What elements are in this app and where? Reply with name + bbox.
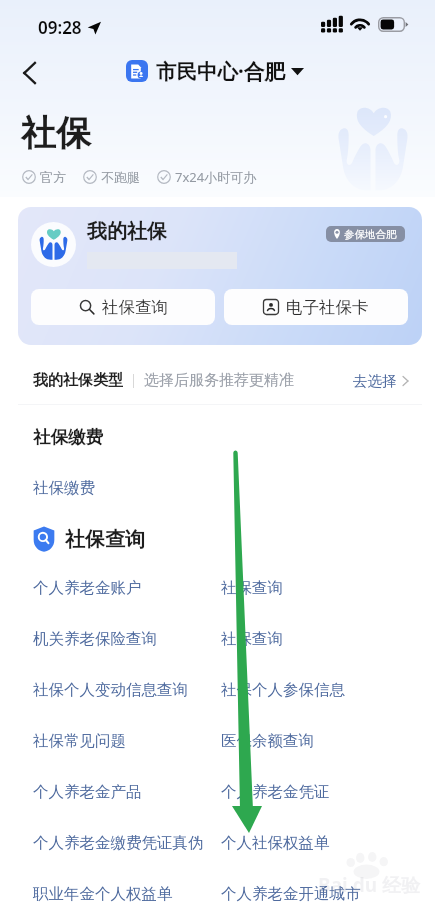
staticText: 社保个人变动信息查询 — [33, 680, 188, 700]
staticText: 去选择 — [353, 372, 397, 390]
button[interactable]: 医保余额查询 — [221, 731, 314, 751]
button[interactable]: 社保个人变动信息查询 — [33, 680, 188, 700]
staticText: 社保查询 — [102, 297, 168, 318]
button[interactable]: 参保地合肥 — [326, 226, 405, 242]
staticText: 社保 — [21, 111, 91, 155]
staticText: 个人养老金账户 — [33, 578, 142, 598]
staticText: 社保常见问题 — [33, 731, 126, 751]
staticText: 参保地合肥 — [344, 228, 397, 241]
button[interactable]: 职业年金个人权益单 — [33, 884, 173, 904]
button[interactable]: 个人养老金账户 — [33, 578, 142, 598]
staticText: 个人社保权益单 — [221, 833, 330, 853]
staticText: 电子社保卡 — [286, 297, 369, 318]
staticText: 我的社保 — [87, 219, 167, 244]
staticText: 社保查询 — [65, 527, 145, 552]
button[interactable]: 社保查询 — [221, 578, 283, 598]
staticText: 个人养老金开通城市 — [221, 884, 361, 904]
staticText: 09:28 — [38, 16, 82, 39]
staticText: 社保查询 — [221, 629, 283, 649]
staticText: 社保缴费 — [33, 478, 95, 498]
staticText: 个人养老金产品 — [33, 782, 142, 802]
staticText: 医保余额查询 — [221, 731, 314, 751]
staticText: 官方 — [40, 169, 66, 185]
button[interactable]: 社保缴费 — [33, 478, 95, 498]
staticText: 7x24小时可办 — [175, 168, 257, 186]
button[interactable]: Back — [14, 58, 44, 88]
staticText: Bai du 经验 — [318, 872, 420, 898]
button[interactable]: 社保个人参保信息 — [221, 680, 345, 700]
button[interactable]: 个人社保权益单 — [221, 833, 330, 853]
staticText: 社保查询 — [221, 578, 283, 598]
staticText: 个人养老金凭证 — [221, 782, 330, 802]
button[interactable]: 个人养老金开通城市 — [221, 884, 361, 904]
button[interactable]: 个人养老金缴费凭证真伪 — [33, 833, 204, 853]
button[interactable]: 社保查询 — [31, 289, 215, 325]
staticText: 职业年金个人权益单 — [33, 884, 173, 904]
staticText: 选择后服务推荐更精准 — [144, 371, 294, 390]
staticText: 我的社保类型 — [33, 371, 123, 390]
staticText: 不跑腿 — [101, 169, 140, 185]
button[interactable]: 我的社保类型 — [18, 356, 422, 405]
staticText: 机关养老保险查询 — [33, 629, 157, 649]
button[interactable]: 电子社保卡 — [224, 289, 408, 325]
button[interactable]: 个人养老金产品 — [33, 782, 142, 802]
button[interactable]: 机关养老保险查询 — [33, 629, 157, 649]
button[interactable]: 社保常见问题 — [33, 731, 126, 751]
staticText: 市民中心·合肥 — [156, 57, 285, 85]
staticText: 个人养老金缴费凭证真伪 — [33, 833, 204, 853]
button[interactable]: 市民中心·合肥 — [126, 57, 304, 85]
button[interactable]: 社保查询 — [221, 629, 283, 649]
staticText: 社保个人参保信息 — [221, 680, 345, 700]
button[interactable]: 个人养老金凭证 — [221, 782, 330, 802]
staticText: 社保缴费 — [33, 426, 103, 448]
